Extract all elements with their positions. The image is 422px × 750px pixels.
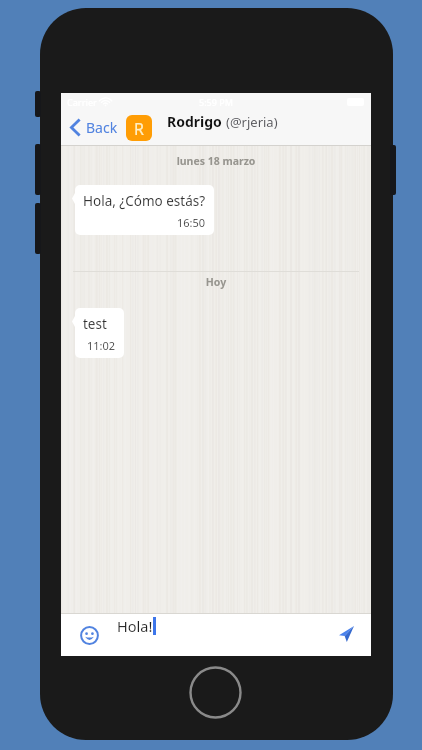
button[interactable]: Emoji xyxy=(78,624,100,646)
staticText: lunes 18 marzo xyxy=(61,154,371,168)
staticText: (@rjeria) xyxy=(226,113,278,131)
staticText: Hola! xyxy=(117,616,153,636)
staticText: 16:50 xyxy=(177,215,206,230)
button[interactable]: test xyxy=(75,308,124,358)
staticText: Back xyxy=(86,118,118,137)
button[interactable]: Hola, ¿Cómo estás? xyxy=(75,185,214,235)
staticText: R xyxy=(134,118,144,140)
button[interactable]: Contact avatar xyxy=(126,115,152,141)
staticText: 5:59 PM xyxy=(199,96,233,108)
button[interactable]: Back xyxy=(61,110,122,145)
staticText: Rodrigo xyxy=(167,112,222,131)
staticText: test xyxy=(83,315,107,333)
staticText: 11:02 xyxy=(87,338,116,353)
staticText: Hoy xyxy=(61,275,371,289)
button[interactable]: Send xyxy=(335,622,358,645)
staticText: Hola, ¿Cómo estás? xyxy=(83,192,206,210)
